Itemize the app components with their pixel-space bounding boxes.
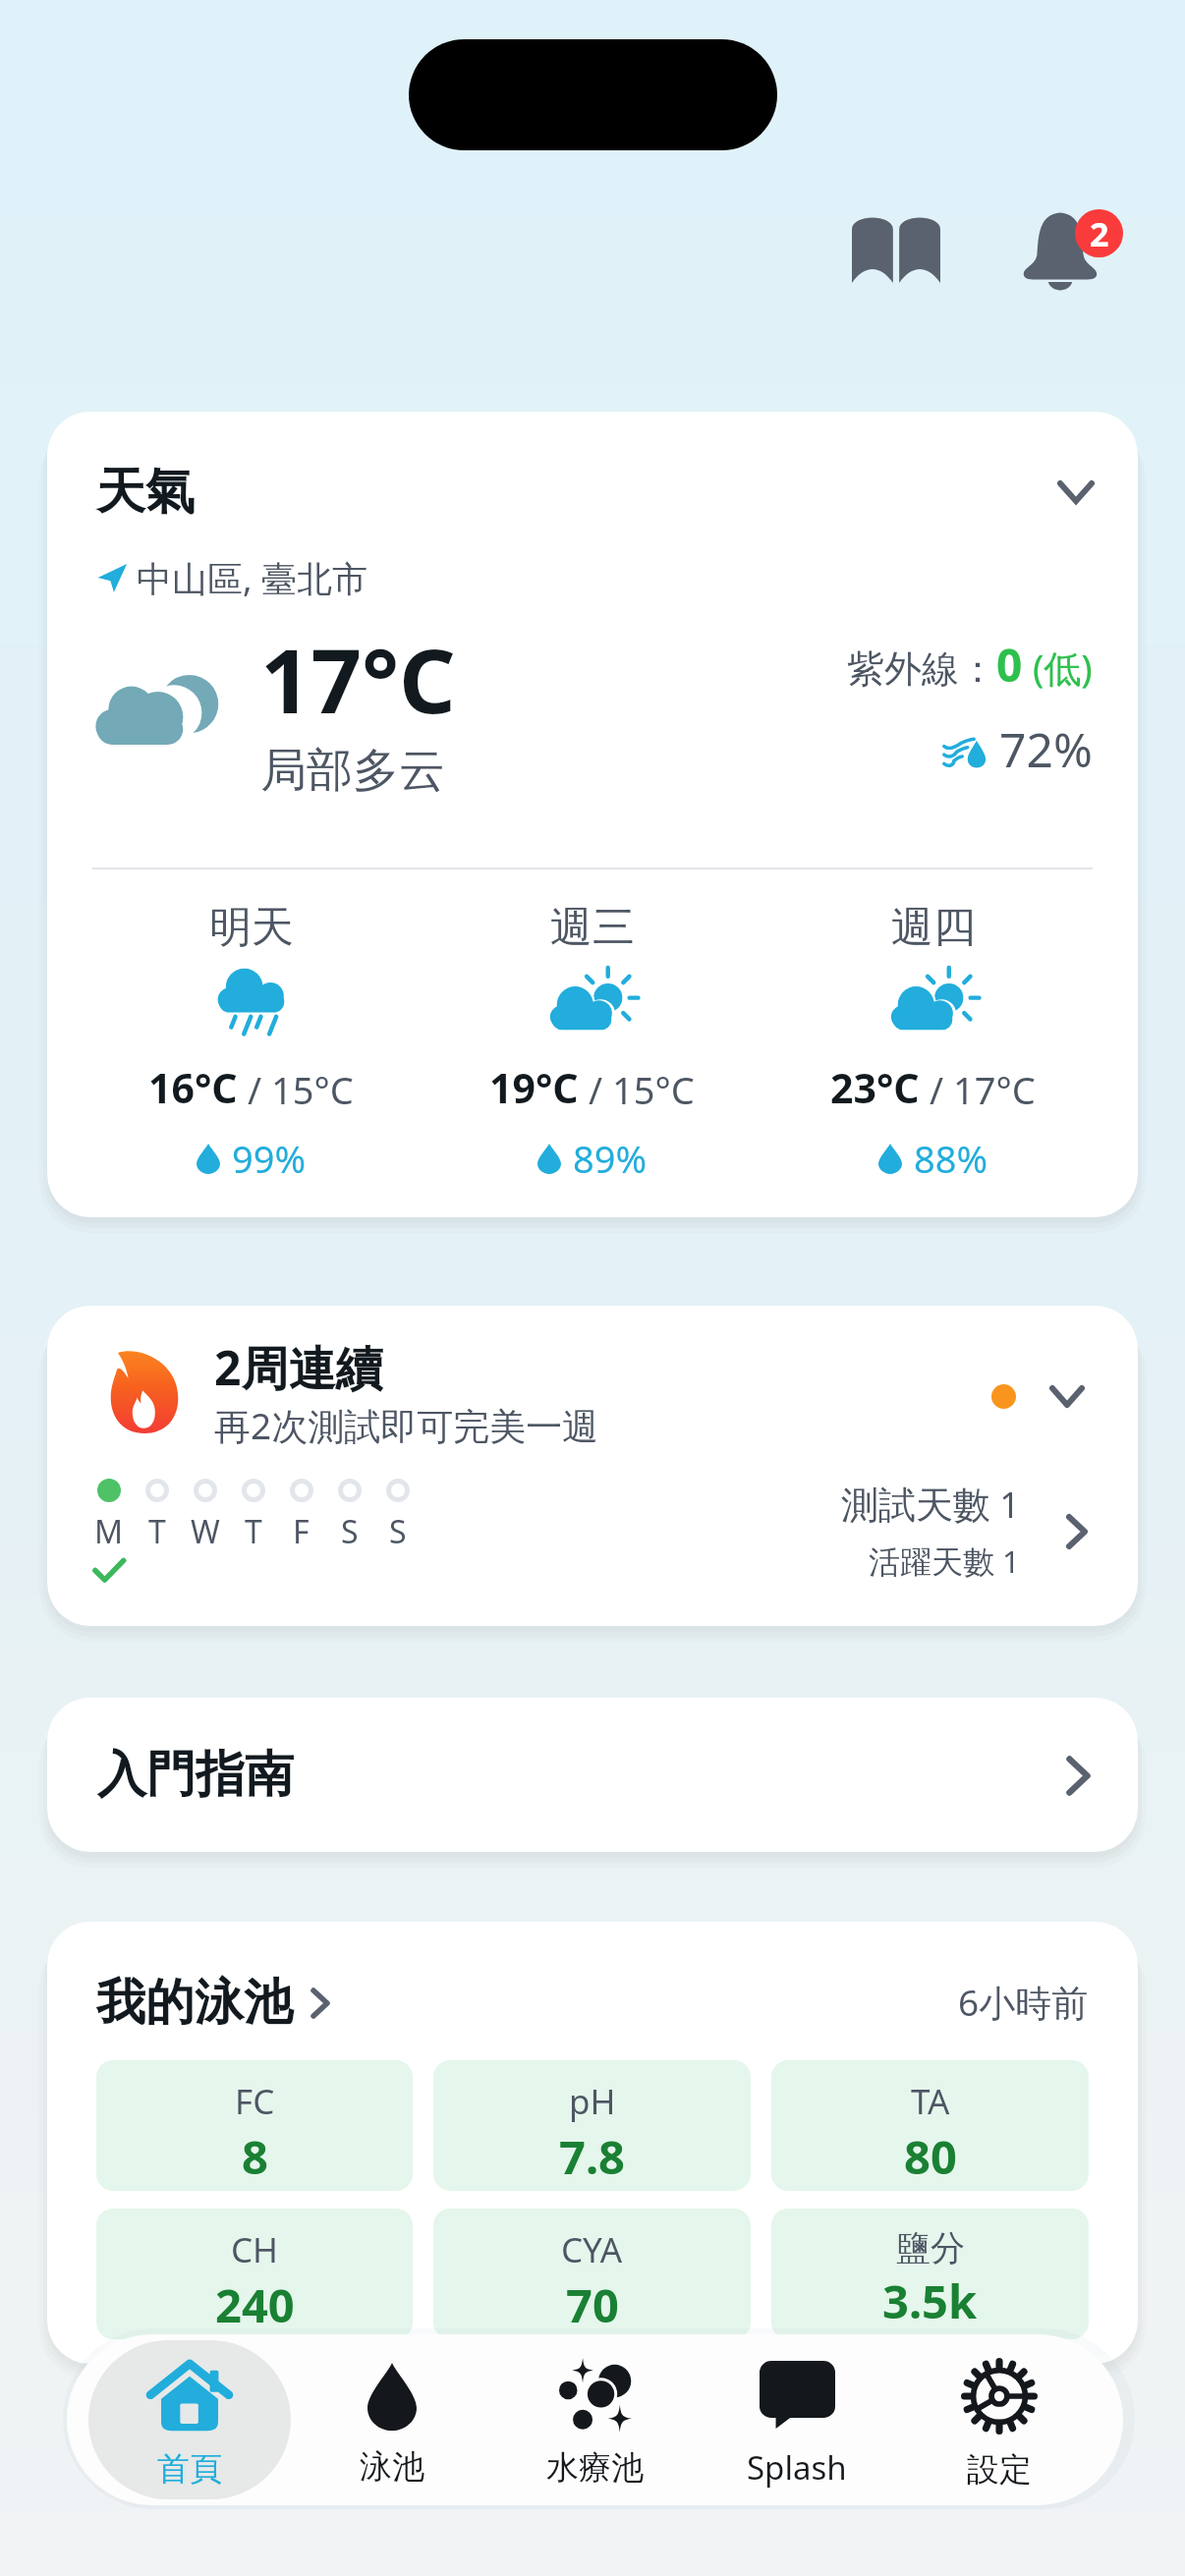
staticText: 水療池	[546, 2447, 644, 2489]
staticText: T	[245, 1510, 262, 1553]
button[interactable]: Notifications	[1023, 209, 1151, 298]
staticText: pH	[569, 2078, 616, 2125]
staticText: 2	[1090, 211, 1109, 256]
button[interactable]: 2周連續	[47, 1306, 1138, 1626]
staticText: 入門指南	[97, 1744, 294, 1806]
staticText: W	[191, 1510, 220, 1553]
button[interactable]: 水療池	[493, 2334, 696, 2505]
staticText: 紫外線：	[847, 645, 996, 693]
button[interactable]: CH	[96, 2209, 413, 2339]
staticText: T	[148, 1510, 166, 1553]
staticText: 19°C	[489, 1060, 579, 1115]
button[interactable]: 週四	[762, 901, 1103, 1184]
staticText: 泳池	[360, 2446, 424, 2488]
button[interactable]: 設定	[898, 2334, 1100, 2505]
staticText: 1	[990, 1481, 1020, 1529]
staticText: 明天	[209, 901, 294, 954]
staticText: 活躍天數	[869, 1542, 994, 1582]
staticText: 1	[994, 1540, 1020, 1582]
staticText: /	[579, 1064, 612, 1115]
staticText: 70	[566, 2273, 619, 2336]
staticText: S	[389, 1510, 407, 1553]
staticText: 測試天數	[841, 1482, 990, 1529]
staticText: 240	[215, 2273, 295, 2336]
staticText: 23°C	[830, 1060, 920, 1115]
staticText: (低)	[1023, 642, 1093, 693]
staticText: 鹽分	[896, 2226, 965, 2269]
button[interactable]: Streak details	[1053, 1508, 1100, 1555]
staticText: Splash	[747, 2445, 847, 2490]
button[interactable]: 泳池	[291, 2334, 493, 2505]
button[interactable]: Guide book	[823, 197, 969, 298]
button[interactable]: 天氣	[47, 412, 1138, 1217]
staticText: 15°C	[612, 1064, 695, 1115]
staticText: /	[920, 1064, 953, 1115]
staticText: 2周連續	[214, 1335, 383, 1400]
button[interactable]: 鹽分	[771, 2209, 1089, 2339]
staticText: 7.8	[559, 2125, 625, 2188]
staticText: F	[293, 1510, 310, 1553]
button[interactable]: 入門指南	[47, 1698, 1138, 1852]
staticText: 3.5k	[882, 2269, 978, 2332]
staticText: CH	[231, 2226, 279, 2273]
button[interactable]: 首頁	[88, 2340, 291, 2499]
staticText: /	[238, 1064, 271, 1115]
staticText: 16°C	[148, 1060, 238, 1115]
staticText: 設定	[967, 2449, 1032, 2491]
staticText: M	[94, 1510, 124, 1553]
button[interactable]: Splash	[696, 2334, 898, 2505]
staticText: 天氣	[96, 461, 195, 523]
staticText: 80	[904, 2125, 957, 2188]
button[interactable]: 明天	[81, 901, 422, 1184]
button[interactable]: 我的泳池	[96, 1972, 348, 2034]
staticText: 89%	[573, 1133, 648, 1184]
staticText: 首頁	[157, 2448, 222, 2490]
staticText: 局部多云	[260, 742, 445, 800]
staticText: 8	[242, 2125, 268, 2188]
staticText: 99%	[232, 1133, 307, 1184]
staticText: 6小時前	[958, 1977, 1089, 2027]
staticText: 週三	[550, 901, 635, 954]
button[interactable]: Open guide	[1048, 1746, 1107, 1805]
staticText: 15°C	[271, 1064, 354, 1115]
staticText: 再2次測試即可完美一週	[214, 1400, 599, 1450]
staticText: 0	[996, 634, 1023, 696]
staticText: FC	[235, 2078, 275, 2125]
staticText: TA	[911, 2078, 950, 2125]
button[interactable]: 週三	[422, 901, 762, 1184]
staticText: CYA	[561, 2226, 623, 2273]
staticText: 17°C	[953, 1064, 1036, 1115]
button[interactable]: TA	[771, 2060, 1089, 2191]
button[interactable]: pH	[433, 2060, 751, 2191]
staticText: 中山區, 臺北市	[137, 554, 368, 602]
staticText: S	[341, 1510, 359, 1553]
button[interactable]: Collapse weather	[1032, 448, 1120, 536]
other: Open my pool	[293, 1976, 348, 2031]
staticText: 我的泳池	[96, 1972, 293, 2034]
staticText: 週四	[891, 901, 976, 954]
button[interactable]: FC	[96, 2060, 413, 2191]
button[interactable]: Expand streak	[1038, 1367, 1097, 1426]
staticText: 72%	[999, 717, 1093, 781]
staticText: 88%	[914, 1133, 988, 1184]
staticText: 17°C	[260, 619, 456, 740]
button[interactable]: CYA	[433, 2209, 751, 2339]
